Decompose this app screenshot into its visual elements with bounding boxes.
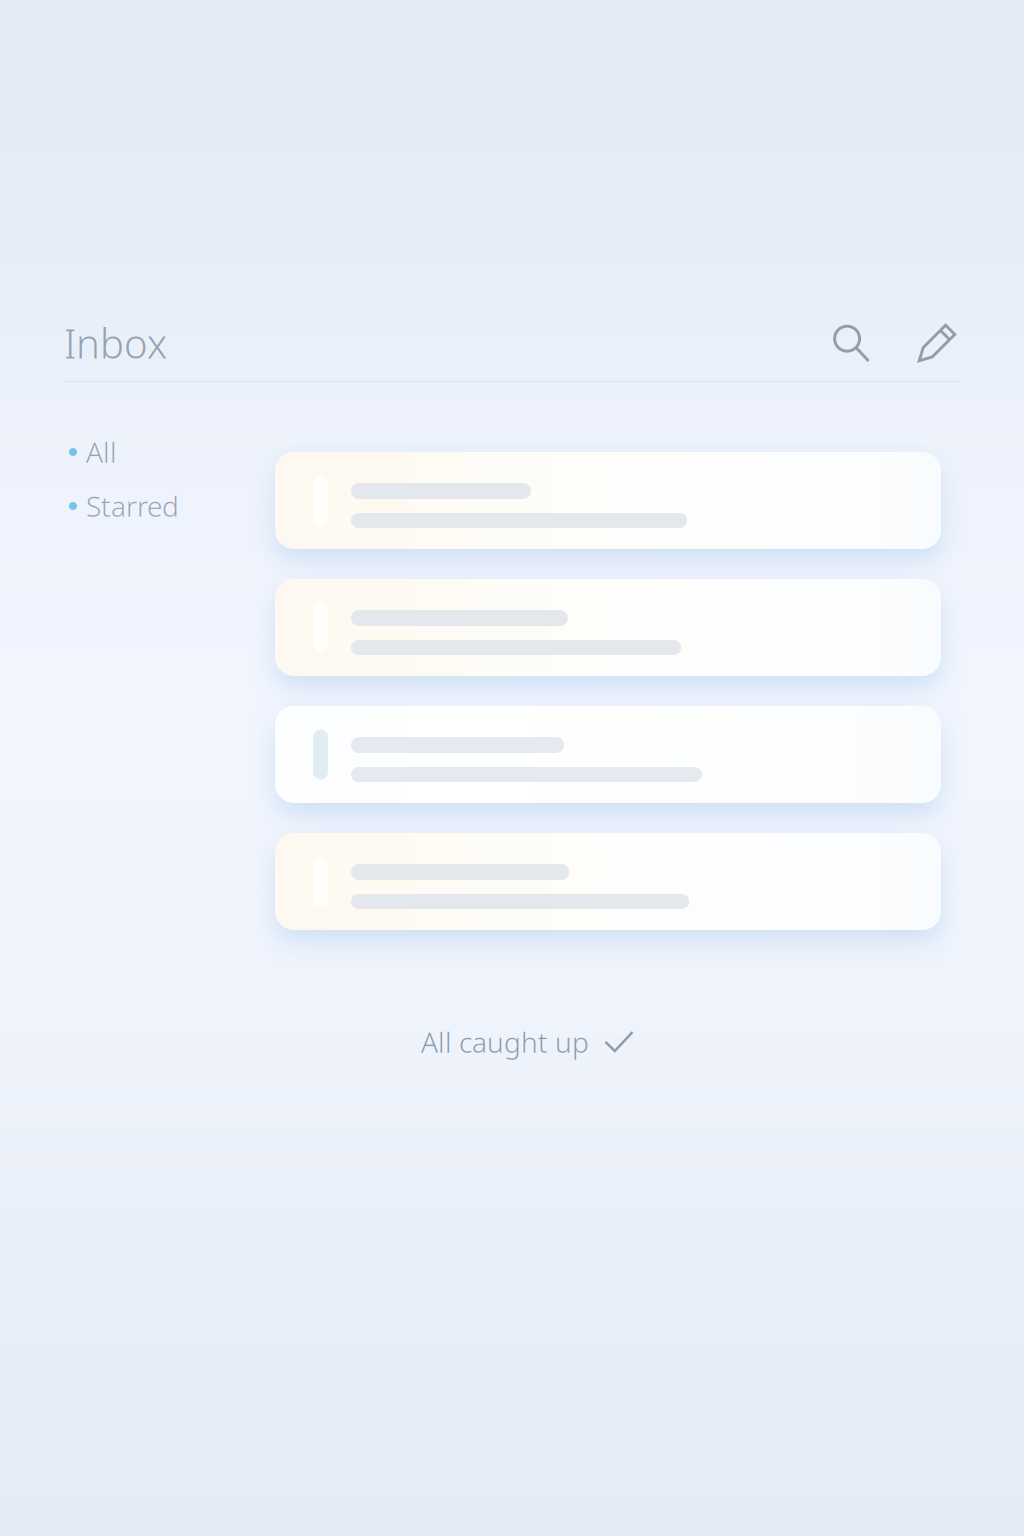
button[interactable]: Search: [822, 314, 880, 372]
staticText: All: [86, 433, 117, 471]
button[interactable]: Compose: [908, 314, 966, 372]
button[interactable]: Message 2, loading: [275, 579, 941, 676]
button[interactable]: Message 3, loading: [275, 706, 941, 803]
staticText: Starred: [86, 487, 179, 525]
button[interactable]: All: [69, 432, 259, 472]
staticText: Inbox: [64, 316, 167, 369]
staticText: All caught up: [421, 1023, 589, 1061]
button[interactable]: Message 4, loading: [275, 833, 941, 930]
button[interactable]: Message 1, loading: [275, 452, 941, 549]
button[interactable]: Starred: [69, 486, 259, 526]
